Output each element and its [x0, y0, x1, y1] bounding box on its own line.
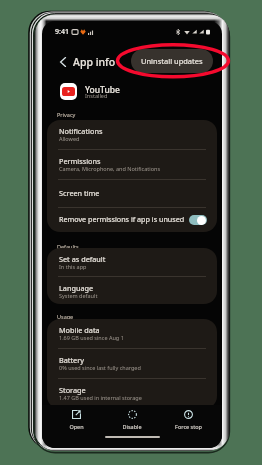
staticText: 0% used since last fully charged — [59, 364, 141, 371]
button[interactable]: Remove permissions if app is unused — [47, 208, 217, 232]
button[interactable]: Disable — [104, 410, 160, 430]
staticText: Mobile data — [59, 325, 100, 335]
button[interactable]: Uninstall updates — [131, 49, 213, 73]
staticText: Notifications — [59, 126, 103, 136]
staticText: Screen time — [59, 188, 100, 198]
staticText: 1.47 GB used in internal storage — [59, 394, 142, 401]
staticText: Allowed — [59, 135, 80, 142]
button[interactable]: Permissions — [47, 150, 217, 179]
staticText: Privacy — [57, 111, 76, 118]
staticText: Installed — [85, 92, 108, 99]
button[interactable]: Set as default — [47, 248, 217, 276]
staticText: Open — [69, 423, 84, 430]
button[interactable]: Back — [55, 54, 71, 70]
staticText: Camera, Microphone, and Notifications — [59, 165, 161, 172]
staticText: Battery — [59, 355, 84, 365]
staticText: 1.69 GB used since Aug 1 — [59, 334, 124, 341]
staticText: System default — [59, 292, 98, 299]
button[interactable]: Storage — [47, 379, 217, 408]
staticText: 9:41 — [55, 27, 69, 37]
staticText: Usage — [57, 313, 74, 320]
staticText: In this app — [59, 263, 87, 270]
button[interactable]: Screen time — [47, 180, 217, 207]
button[interactable]: Language — [47, 277, 217, 304]
button[interactable]: Force stop — [160, 410, 216, 430]
button[interactable]: Mobile data — [47, 319, 217, 348]
staticText: Language — [59, 283, 94, 293]
staticText: App info — [73, 55, 116, 69]
staticText: Uninstall updates — [141, 56, 203, 66]
staticText: Set as default — [59, 254, 106, 264]
staticText: Force stop — [175, 423, 202, 430]
staticText: Disable — [122, 423, 142, 430]
staticText: YouTube — [85, 84, 120, 96]
staticText: Remove permissions if app is unused — [59, 214, 189, 224]
staticText: Storage — [59, 385, 86, 395]
button[interactable]: Notifications — [47, 120, 217, 149]
button[interactable]: Open — [48, 410, 104, 430]
staticText: Defaults — [57, 243, 79, 250]
staticText: Permissions — [59, 156, 101, 166]
button[interactable]: Battery — [47, 349, 217, 378]
